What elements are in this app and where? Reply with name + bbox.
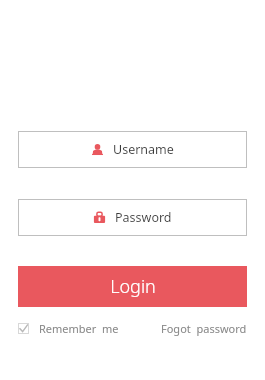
button[interactable]: Remember me [18,321,119,336]
staticText: Login [110,274,156,299]
staticText: Username [113,141,174,158]
button[interactable]: Password [18,199,247,236]
button[interactable]: Login [18,266,247,307]
staticText: Password [115,209,172,226]
staticText: Remember me [39,321,119,336]
button[interactable]: Username [18,131,247,168]
button[interactable]: Fogot password [161,321,247,336]
staticText: Fogot password [161,321,247,336]
